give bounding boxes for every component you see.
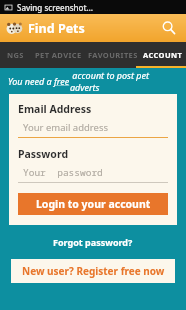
staticText: free (54, 75, 70, 87)
button[interactable]: Search (158, 17, 180, 39)
staticText: You need a (8, 75, 54, 87)
button[interactable]: Login to your account (18, 193, 168, 215)
button[interactable]: NGS (0, 42, 30, 68)
staticText: Forgot password? (53, 236, 133, 248)
staticText: Password (18, 147, 69, 161)
staticText: Saving screenshot… (17, 2, 93, 13)
staticText: Login to your account (36, 197, 151, 211)
staticText: ACCOUNT (143, 50, 183, 60)
staticText: FAVOURITES (88, 50, 138, 60)
button[interactable]: Forgot password? (45, 231, 141, 253)
staticText: PET ADVICE (35, 50, 82, 60)
staticText: account to post pet adverts (70, 69, 178, 93)
staticText: Find Pets (28, 20, 85, 37)
staticText: NGS (7, 50, 24, 60)
staticText: New user? Register free now (22, 264, 165, 278)
button[interactable]: FAVOURITES (86, 42, 140, 68)
button[interactable]: PET ADVICE (30, 42, 86, 68)
button[interactable]: Your email address (18, 121, 168, 138)
button[interactable]: ACCOUNT (140, 42, 186, 68)
button[interactable]: New user? Register free now (11, 259, 175, 283)
staticText: Your password (23, 166, 103, 179)
staticText: Email Address (18, 102, 92, 116)
button[interactable]: Your password (18, 166, 168, 183)
staticText: Your email address (23, 121, 109, 134)
